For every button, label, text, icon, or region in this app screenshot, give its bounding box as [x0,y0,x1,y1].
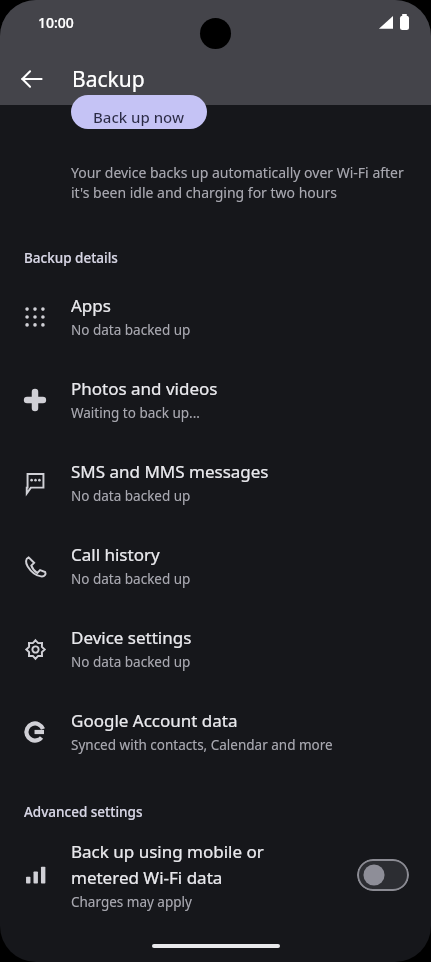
button[interactable]: Back up using mobile or metered Wi-Fi da… [0,829,431,921]
staticText: Call history [71,543,160,566]
staticText: Backup details [24,249,118,267]
button[interactable]: Back up now [71,95,207,129]
staticText: No data backed up [71,570,191,588]
staticText: Photos and videos [71,377,218,400]
staticText: Backup [72,65,145,94]
staticText: No data backed up [71,321,191,339]
button[interactable]: Google Account data [0,690,431,773]
staticText: No data backed up [71,487,191,505]
staticText: Charges may apply [71,893,192,911]
staticText: Back up now [93,107,185,127]
staticText: 10:00 [38,13,74,32]
button[interactable]: Back up using mobile or metered Wi-Fi da… [357,859,409,891]
staticText: Synced with contacts, Calendar and more [71,736,333,754]
staticText: Apps [71,294,111,317]
button[interactable]: Call history [0,524,431,607]
staticText: SMS and MMS messages [71,460,269,483]
staticText: Your device backs up automatically over … [71,163,404,203]
button[interactable]: Apps [0,275,431,358]
button[interactable]: SMS and MMS messages [0,441,431,524]
staticText: No data backed up [71,653,191,671]
button[interactable]: Device settings [0,607,431,690]
staticText: Waiting to back up... [71,404,200,422]
staticText: Advanced settings [24,803,143,821]
button[interactable]: Photos and videos [0,358,431,441]
button[interactable]: Back [8,55,56,103]
staticText: Google Account data [71,709,238,732]
staticText: Back up using mobile or metered Wi-Fi da… [71,840,264,889]
staticText: Device settings [71,626,192,649]
